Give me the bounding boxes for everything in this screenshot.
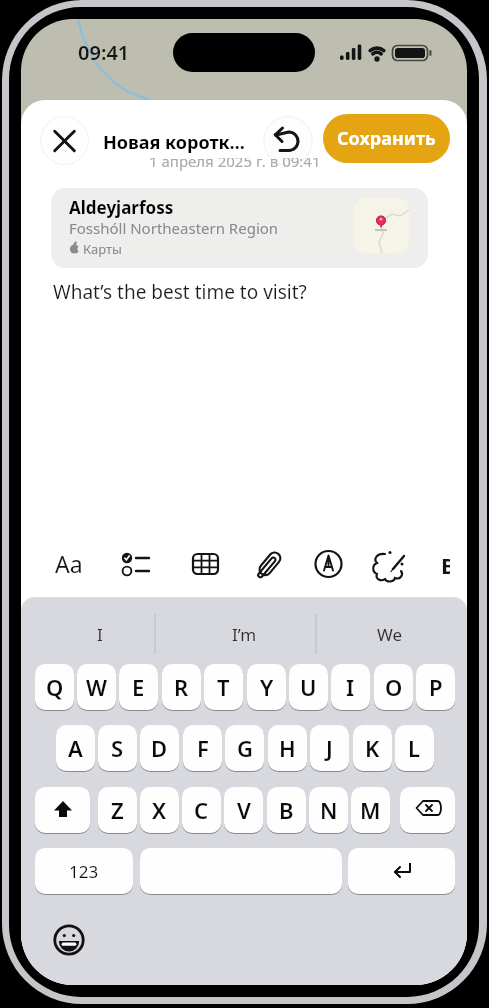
button[interactable]: T — [204, 664, 243, 710]
button[interactable]: F — [183, 725, 222, 771]
button[interactable]: Aldeyjarfoss — [51, 188, 428, 268]
staticText: B — [441, 550, 450, 580]
button[interactable]: N — [309, 787, 348, 833]
button[interactable]: J — [310, 725, 349, 771]
staticText: E — [132, 672, 145, 702]
button[interactable]: I’m — [179, 615, 309, 653]
button[interactable]: E — [119, 664, 158, 710]
staticText: F — [197, 733, 209, 763]
staticText: Q — [46, 672, 64, 702]
staticText: Z — [111, 795, 124, 825]
button[interactable]: I — [331, 664, 370, 710]
staticText: J — [326, 733, 333, 763]
button[interactable] — [400, 787, 455, 833]
staticText: G — [237, 733, 253, 763]
staticText: We — [377, 623, 403, 646]
button[interactable] — [348, 848, 455, 894]
staticText: 09:41 — [78, 39, 130, 66]
button[interactable]: B — [267, 787, 306, 833]
staticText: D — [151, 733, 168, 763]
staticText: O — [385, 672, 403, 702]
staticText: T — [217, 672, 230, 702]
staticText: C — [194, 795, 209, 825]
staticText: Карты — [83, 240, 122, 258]
button[interactable] — [117, 548, 157, 582]
button[interactable]: L — [395, 725, 434, 771]
button[interactable]: Q — [35, 664, 74, 710]
staticText: V — [237, 795, 251, 825]
button[interactable]: S — [98, 725, 137, 771]
button[interactable]: C — [182, 787, 221, 833]
button[interactable] — [140, 848, 342, 894]
button[interactable]: Y — [247, 664, 286, 710]
button[interactable]: G — [225, 725, 264, 771]
staticText: Сохранить — [337, 126, 436, 151]
button[interactable]: Aa — [55, 548, 83, 579]
staticText: X — [152, 795, 167, 825]
staticText: I’m — [232, 623, 257, 646]
staticText: Y — [260, 672, 274, 702]
button[interactable]: X — [140, 787, 179, 833]
staticText: A — [68, 733, 83, 763]
button[interactable]: D — [140, 725, 179, 771]
button[interactable] — [253, 548, 285, 582]
button[interactable] — [35, 787, 90, 833]
staticText: I — [346, 672, 355, 702]
staticText: Новая коротк… — [103, 130, 245, 155]
staticText: H — [279, 733, 296, 763]
staticText: L — [408, 733, 421, 763]
button[interactable]: R — [162, 664, 201, 710]
button[interactable]: M — [351, 787, 390, 833]
button[interactable]: Z — [98, 787, 137, 833]
button[interactable] — [53, 924, 85, 956]
staticText: K — [365, 733, 380, 763]
staticText: Aldeyjarfoss — [69, 196, 174, 219]
button[interactable]: W — [77, 664, 116, 710]
button[interactable]: O — [374, 664, 413, 710]
staticText: What’s the best time to visit? — [53, 279, 307, 305]
staticText: U — [300, 672, 317, 702]
staticText: 1 апреля 2025 г. в 09:41 — [149, 158, 321, 171]
staticText: B — [279, 795, 294, 825]
staticText: N — [320, 795, 338, 825]
button[interactable]: H — [268, 725, 307, 771]
staticText: R — [174, 672, 189, 702]
button[interactable]: V — [224, 787, 263, 833]
button[interactable]: I — [35, 615, 165, 653]
button[interactable] — [192, 553, 219, 575]
button[interactable]: Сохранить — [323, 114, 450, 163]
button[interactable]: A — [56, 725, 95, 771]
button[interactable] — [371, 549, 409, 583]
staticText: I — [97, 623, 103, 646]
staticText: M — [360, 795, 381, 825]
staticText: Fosshóll Northeastern Region — [69, 218, 279, 238]
button[interactable]: 123 — [35, 848, 133, 894]
button[interactable]: U — [289, 664, 328, 710]
staticText: P — [429, 672, 443, 702]
button[interactable]: K — [353, 725, 392, 771]
staticText: W — [86, 672, 107, 702]
button[interactable]: We — [325, 615, 455, 653]
staticText: S — [111, 733, 124, 763]
button[interactable] — [314, 549, 344, 579]
button[interactable]: P — [416, 664, 455, 710]
staticText: 123 — [69, 860, 99, 883]
button[interactable] — [40, 116, 89, 165]
button[interactable] — [263, 116, 313, 166]
